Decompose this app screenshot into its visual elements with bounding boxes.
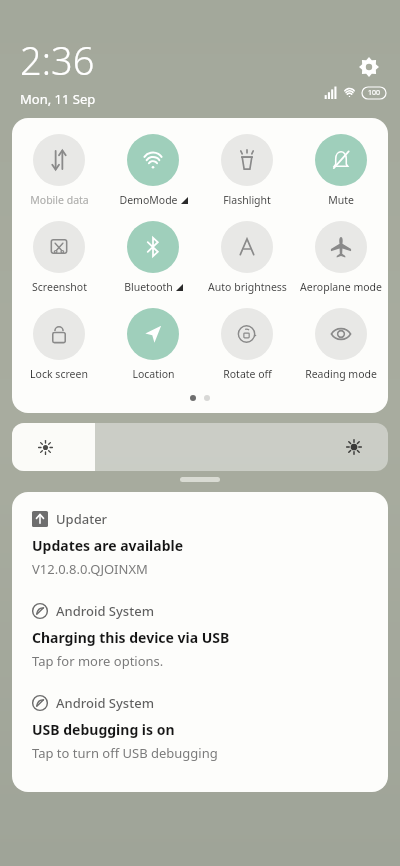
- staticText: Screenshot: [32, 280, 87, 294]
- button[interactable]: DemoMode: [106, 132, 200, 209]
- staticText: Location: [132, 367, 175, 381]
- button[interactable]: Reading mode: [294, 306, 388, 383]
- button[interactable]: Rotate off: [200, 306, 294, 383]
- staticText: Bluetooth: [124, 280, 173, 294]
- staticText: Charging this device via USB: [32, 628, 230, 647]
- button[interactable]: Updater: [32, 510, 372, 578]
- staticText: Android System: [56, 602, 154, 620]
- button[interactable]: Location: [106, 306, 200, 383]
- staticText: V12.0.8.0.QJOINXM: [32, 560, 148, 578]
- button[interactable]: Mobile data: [12, 132, 106, 209]
- staticText: Mute: [328, 193, 354, 207]
- staticText: 100: [368, 88, 381, 98]
- staticText: DemoMode: [119, 193, 178, 207]
- button[interactable]: Mute: [294, 132, 388, 209]
- staticText: USB debugging is on: [32, 720, 175, 739]
- staticText: Reading mode: [305, 367, 377, 381]
- staticText: Tap to turn off USB debugging: [32, 744, 218, 762]
- button[interactable]: Aeroplane mode: [294, 219, 388, 296]
- staticText: Lock screen: [30, 367, 88, 381]
- staticText: Rotate off: [223, 367, 272, 381]
- button[interactable]: Bluetooth: [106, 219, 200, 296]
- staticText: Auto brightness: [208, 280, 287, 294]
- staticText: Android System: [56, 694, 154, 712]
- staticText: Aeroplane mode: [300, 280, 382, 294]
- button[interactable]: Settings: [352, 50, 386, 84]
- staticText: Updater: [56, 510, 108, 528]
- staticText: Flashlight: [223, 193, 271, 207]
- staticText: 2:36: [20, 34, 95, 86]
- button[interactable]: Screenshot: [12, 219, 106, 296]
- button[interactable]: Android System: [32, 602, 372, 670]
- button[interactable]: Lock screen: [12, 306, 106, 383]
- button[interactable]: Auto brightness: [200, 219, 294, 296]
- staticText: Updates are available: [32, 536, 184, 555]
- button[interactable]: Flashlight: [200, 132, 294, 209]
- button[interactable]: Android System: [32, 694, 372, 762]
- staticText: Mon, 11 Sep: [20, 90, 96, 108]
- staticText: Tap for more options.: [32, 652, 164, 670]
- button[interactable]: Brightness: [12, 423, 388, 471]
- staticText: Mobile data: [30, 193, 89, 207]
